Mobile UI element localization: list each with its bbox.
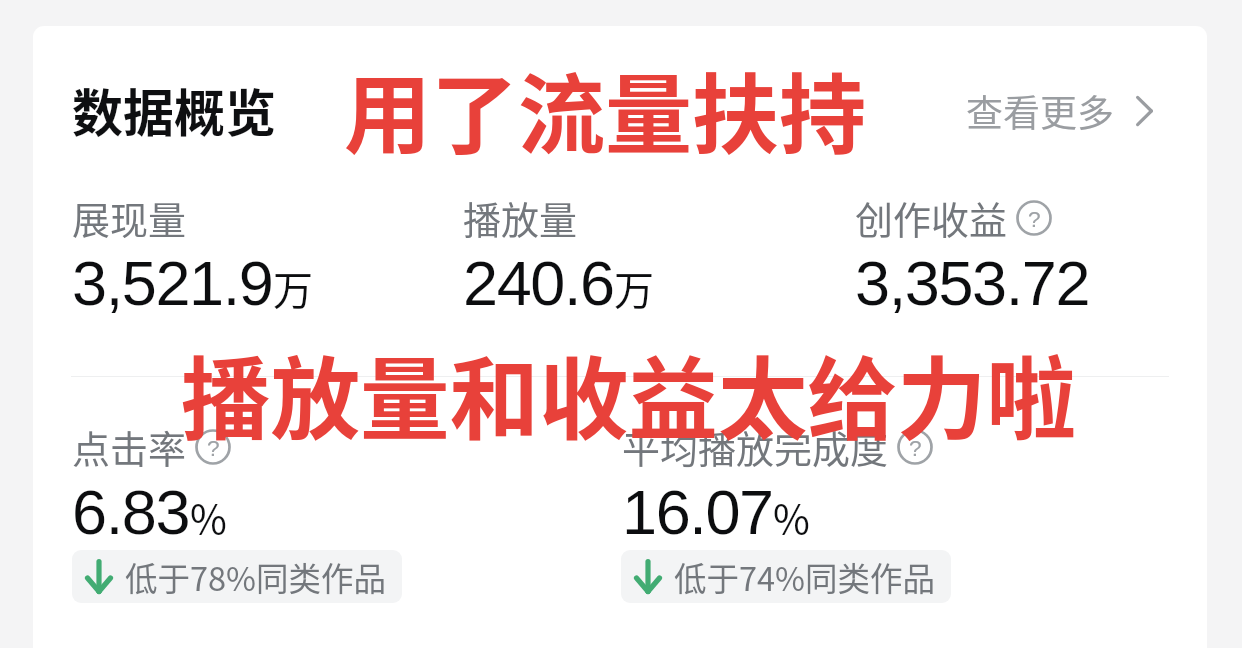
staticText: 3,353.72: [855, 248, 1090, 318]
staticText: %: [190, 488, 227, 546]
staticText: 数据概览: [72, 73, 277, 147]
staticText: 点击率: [72, 419, 187, 474]
staticText: 查看更多: [966, 84, 1114, 138]
staticText: 播放量和收益太给力啦: [181, 328, 1076, 458]
staticText: 万: [273, 259, 313, 317]
staticText: ?: [207, 435, 220, 460]
button[interactable]: 平均播放完成度 说明: [897, 429, 933, 465]
button[interactable]: 查看更多: [966, 84, 1153, 138]
button[interactable]: 240.6: [463, 248, 654, 318]
button[interactable]: 3,521.9: [72, 248, 313, 318]
button[interactable]: 创作收益 说明: [1016, 200, 1052, 236]
staticText: 创作收益: [855, 190, 1008, 245]
staticText: 6.83: [72, 477, 190, 547]
button[interactable]: 3,353.72: [855, 248, 1090, 318]
staticText: ?: [1028, 206, 1041, 231]
staticText: 用了流量扶持: [344, 46, 866, 172]
staticText: 播放量: [463, 190, 578, 245]
staticText: 万: [614, 259, 654, 317]
button[interactable]: 16.07: [622, 477, 810, 547]
staticText: ?: [909, 435, 922, 460]
button[interactable]: 低于74%同类作品: [621, 550, 951, 603]
staticText: 3,521.9: [72, 248, 273, 318]
staticText: 展现量: [72, 190, 187, 245]
staticText: 低于78%同类作品: [125, 553, 387, 600]
button[interactable]: 6.83: [72, 477, 227, 547]
staticText: %: [773, 488, 810, 546]
staticText: 16.07: [622, 477, 773, 547]
button[interactable]: 点击率 说明: [195, 429, 231, 465]
staticText: 平均播放完成度: [622, 419, 889, 474]
button[interactable]: 低于78%同类作品: [72, 550, 402, 603]
staticText: 低于74%同类作品: [674, 553, 936, 600]
staticText: 240.6: [463, 248, 614, 318]
